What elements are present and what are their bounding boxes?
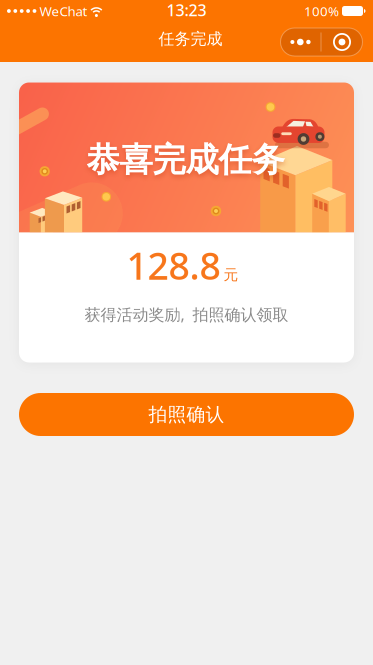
- staticText: 元: [223, 266, 238, 284]
- staticText: 128.8: [126, 240, 220, 290]
- staticText: 任务完成: [158, 29, 222, 49]
- staticText: 13:23: [166, 0, 206, 21]
- staticText: 100%: [304, 2, 339, 20]
- staticText: 获得活动奖励, 拍照确认领取: [84, 304, 288, 325]
- button[interactable]: 更多: [280, 28, 320, 56]
- staticText: 拍照确认: [148, 403, 224, 426]
- button[interactable]: 拍照确认: [19, 393, 354, 436]
- staticText: WeChat: [39, 2, 87, 20]
- staticText: 恭喜完成任务: [87, 139, 285, 180]
- button[interactable]: 关闭小程序: [321, 28, 362, 56]
